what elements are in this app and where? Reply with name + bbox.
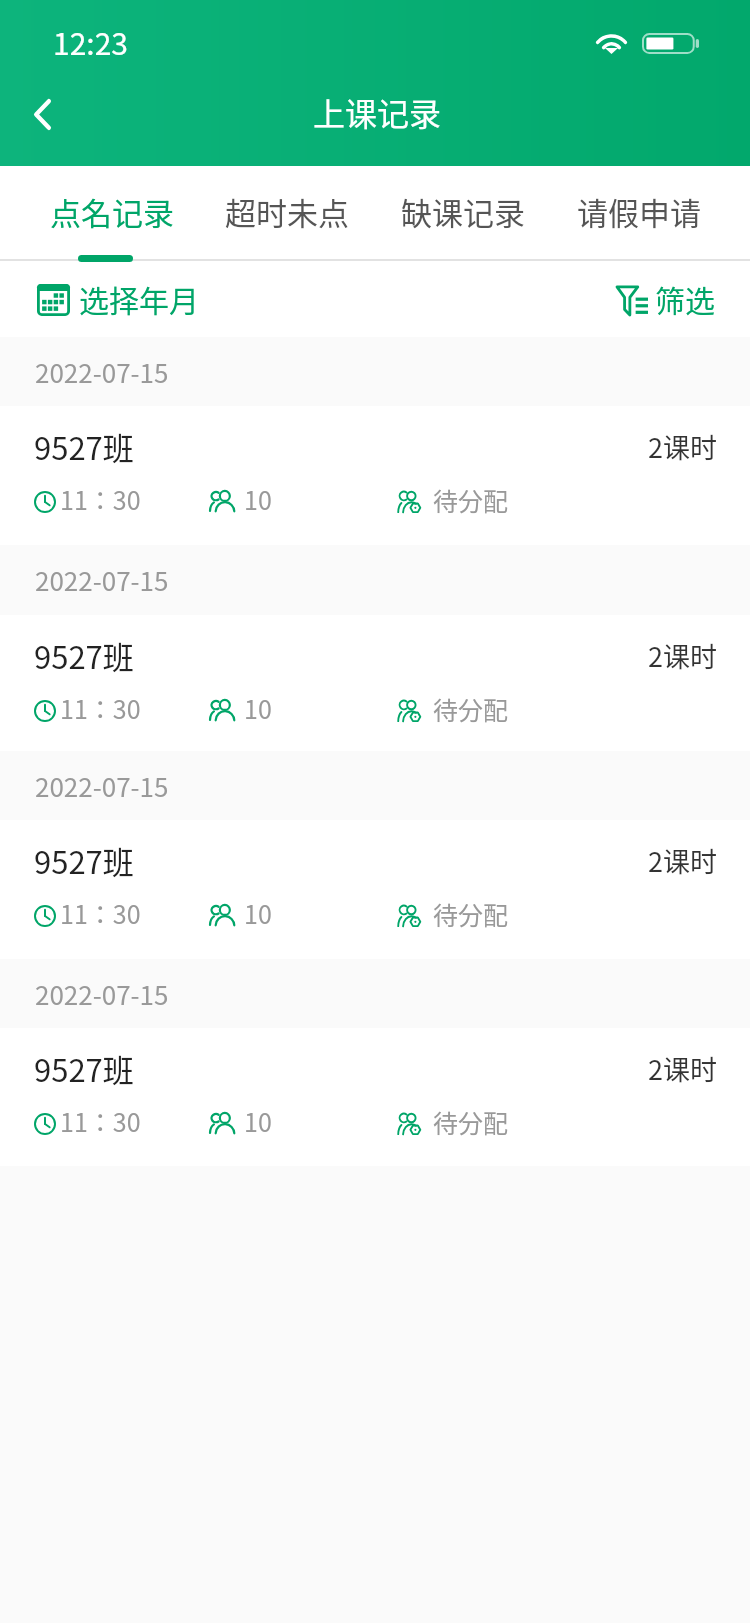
staticText: 上课记录 [313,89,442,135]
button[interactable]: 选择年月 [0,262,213,337]
staticText: 超时未点 [225,189,349,234]
staticText: 待分配 [433,691,509,727]
staticText: 11：30 [60,1103,141,1139]
button[interactable]: 9527班 [0,406,750,545]
staticText: 2022-07-15 [35,561,169,599]
staticText: 9527班 [34,633,134,678]
button[interactable]: 请假申请 [551,166,727,262]
staticText: 9527班 [34,424,134,469]
staticText: 待分配 [433,1104,509,1140]
staticText: 12:23 [53,20,128,63]
staticText: 2课时 [648,636,717,675]
staticText: 2022-07-15 [35,767,169,805]
staticText: 2022-07-15 [35,353,169,391]
staticText: 2课时 [648,841,717,880]
staticText: 9527班 [34,838,134,883]
staticText: 11：30 [60,481,141,517]
button[interactable]: 超时未点 [199,166,375,262]
staticText: 11：30 [60,690,141,726]
staticText: 10 [244,895,272,931]
staticText: 10 [244,690,272,726]
staticText: 2022-07-15 [35,975,169,1013]
staticText: 请假申请 [577,189,701,234]
staticText: 待分配 [433,896,509,932]
staticText: 筛选 [655,277,715,320]
button[interactable]: 点名记录 [24,166,200,262]
staticText: 2课时 [648,1049,717,1088]
staticText: 10 [244,481,272,517]
staticText: 点名记录 [50,189,174,234]
staticText: 9527班 [34,1046,134,1091]
staticText: 10 [244,1103,272,1139]
button[interactable]: 9527班 [0,820,750,959]
button[interactable]: 9527班 [0,1028,750,1166]
button[interactable]: 筛选 [600,262,750,337]
staticText: 2课时 [648,427,717,466]
staticText: 11：30 [60,895,141,931]
staticText: 选择年月 [79,277,199,320]
staticText: 缺课记录 [401,189,525,234]
button[interactable]: Back [14,86,70,142]
staticText: 待分配 [433,482,509,518]
button[interactable]: 缺课记录 [375,166,551,262]
button[interactable]: 9527班 [0,615,750,751]
